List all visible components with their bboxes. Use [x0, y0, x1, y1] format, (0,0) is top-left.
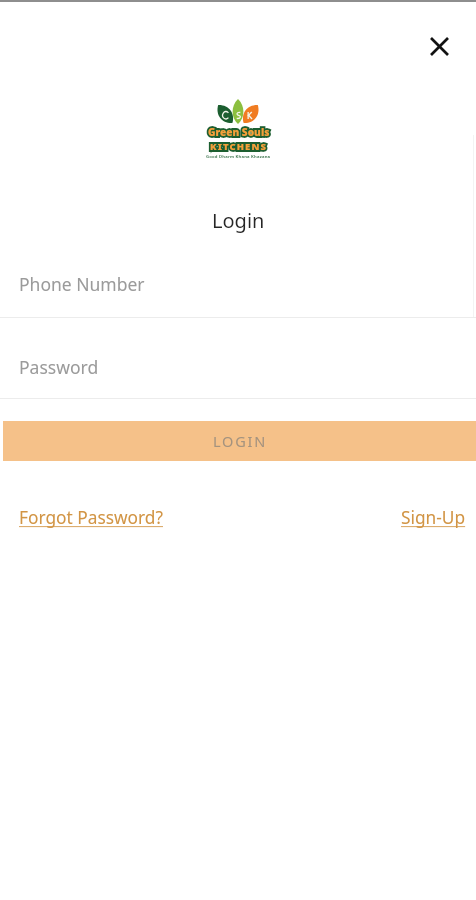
button[interactable]: LOGIN	[3, 421, 476, 461]
staticText: Green Souls	[208, 125, 270, 139]
button[interactable]: Phone Number	[0, 256, 476, 311]
staticText: Login	[212, 207, 265, 234]
button[interactable]: Password	[0, 340, 476, 393]
staticText: Sign-Up	[401, 506, 466, 530]
staticText: Forgot Password?	[19, 506, 163, 530]
staticText: KITCHENS	[210, 140, 267, 153]
button[interactable]: Forgot Password?	[11, 498, 171, 538]
staticText: Phone Number	[19, 272, 145, 296]
staticText: Password	[19, 355, 99, 379]
staticText: Good Dharm Khana Khazana	[206, 154, 271, 160]
button[interactable]: Close	[415, 22, 463, 70]
staticText: LOGIN	[213, 431, 268, 451]
staticText: KITCHENS	[210, 140, 267, 153]
staticText: Green Souls	[208, 125, 270, 139]
button[interactable]: Sign-Up	[393, 498, 474, 538]
